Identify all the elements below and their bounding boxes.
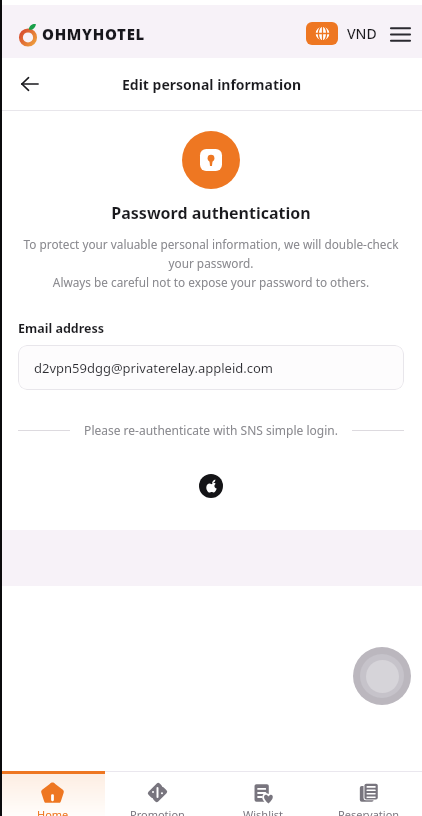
staticText: Please re-authenticate with SNS simple l… bbox=[70, 422, 352, 438]
staticText: OHMYHOTEL bbox=[42, 24, 146, 44]
staticText: Wishlist bbox=[243, 807, 284, 816]
button[interactable]: Chat bbox=[353, 647, 411, 705]
button[interactable]: Back bbox=[10, 64, 50, 104]
staticText: Password authentication bbox=[0, 202, 422, 224]
staticText: Home bbox=[37, 807, 69, 816]
button[interactable]: Sign in with Apple bbox=[199, 474, 223, 498]
staticText: Edit personal information bbox=[122, 75, 301, 94]
staticText: Promotion bbox=[130, 807, 185, 816]
staticText: Reservation bbox=[338, 807, 400, 816]
button[interactable]: Reservation bbox=[316, 771, 422, 816]
staticText: d2vpn59dgg@privaterelay.appleid.com bbox=[34, 359, 273, 377]
button[interactable]: Promotion bbox=[105, 771, 210, 816]
button[interactable]: Language bbox=[306, 22, 338, 45]
button[interactable]: Wishlist bbox=[210, 771, 316, 816]
staticText: VND bbox=[347, 24, 377, 43]
button[interactable]: d2vpn59dgg@privaterelay.appleid.com bbox=[18, 345, 404, 390]
staticText: To protect your valuable personal inform… bbox=[12, 236, 410, 290]
button[interactable]: Menu bbox=[389, 23, 411, 45]
staticText: Email address bbox=[18, 320, 105, 337]
button[interactable]: Home bbox=[0, 771, 105, 816]
